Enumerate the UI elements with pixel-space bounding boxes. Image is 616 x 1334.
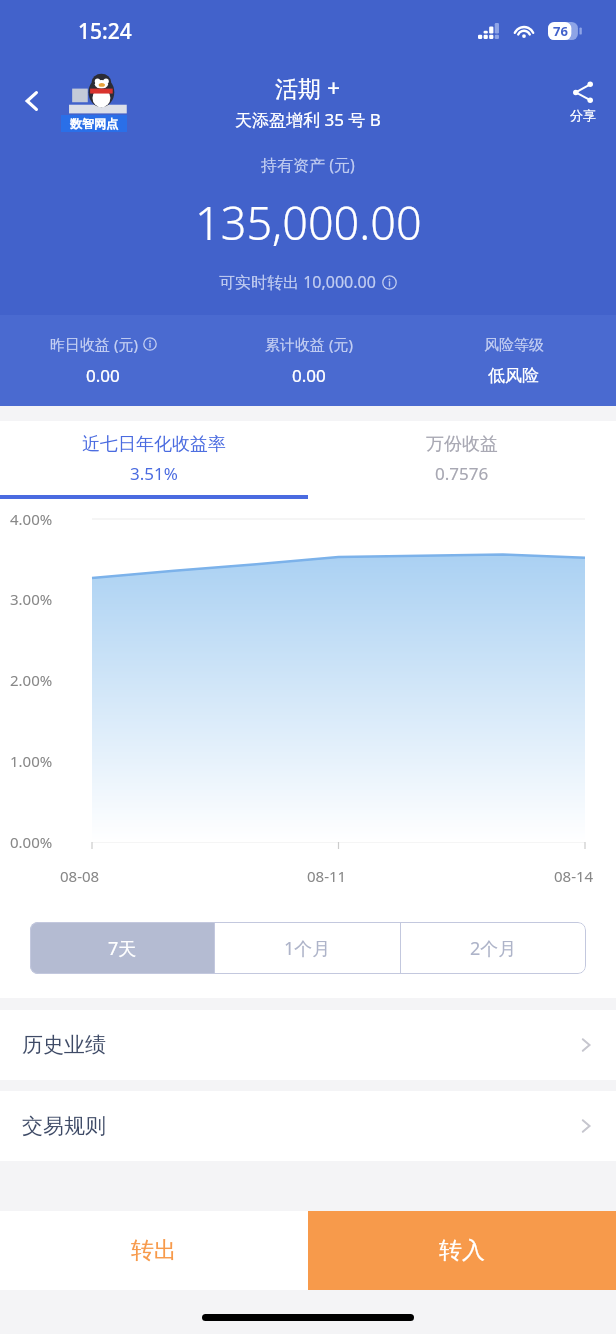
staticText: 0.00 bbox=[86, 364, 120, 387]
staticText: 0.00% bbox=[10, 832, 53, 852]
button[interactable]: 1个月 bbox=[215, 922, 400, 974]
staticText: 累计收益 (元) bbox=[265, 334, 353, 354]
staticText: 1.00% bbox=[10, 751, 53, 771]
staticText: 历史业绩 bbox=[22, 1032, 106, 1058]
staticText: 15:24 bbox=[78, 17, 132, 46]
button[interactable]: 分享 bbox=[566, 76, 600, 127]
button[interactable]: 交易规则 bbox=[0, 1091, 616, 1161]
staticText: 近七日年化收益率 bbox=[82, 433, 226, 456]
staticText: 135,000.00 bbox=[195, 192, 422, 253]
staticText: 万份收益 bbox=[426, 433, 498, 456]
staticText: 0.7576 bbox=[435, 462, 489, 485]
staticText: 转出 bbox=[131, 1236, 177, 1265]
staticText: 2.00% bbox=[10, 670, 53, 690]
staticText: 7天 bbox=[108, 936, 137, 961]
button[interactable]: 近七日年化收益率 bbox=[0, 421, 308, 499]
button[interactable]: 7天 bbox=[30, 922, 214, 974]
staticText: 低风险 bbox=[488, 365, 539, 386]
staticText: 0.00 bbox=[292, 364, 326, 387]
staticText: 分享 bbox=[570, 107, 596, 123]
button[interactable]: 返回 bbox=[10, 79, 54, 123]
button[interactable]: 万份收益 bbox=[308, 421, 616, 499]
staticText: 可实时转出 10,000.00 bbox=[219, 271, 376, 293]
staticText: 1个月 bbox=[284, 936, 331, 961]
staticText: 数智网点 bbox=[70, 116, 118, 131]
staticText: 76 bbox=[553, 22, 568, 40]
button[interactable]: 转入 bbox=[308, 1211, 616, 1290]
staticText: 持有资产 (元) bbox=[261, 154, 355, 176]
staticText: 2个月 bbox=[470, 936, 517, 961]
button[interactable]: 2个月 bbox=[401, 922, 586, 974]
staticText: 08-11 bbox=[307, 866, 347, 886]
staticText: 天添盈增利 35 号 B bbox=[235, 108, 381, 131]
staticText: 转入 bbox=[439, 1236, 485, 1265]
staticText: 交易规则 bbox=[22, 1113, 106, 1139]
staticText: 昨日收益 (元) bbox=[50, 334, 138, 354]
staticText: 活期 + bbox=[275, 72, 341, 103]
button[interactable]: 转出 bbox=[0, 1211, 308, 1290]
staticText: 风险等级 bbox=[484, 336, 544, 355]
button[interactable]: 历史业绩 bbox=[0, 1010, 616, 1080]
staticText: 08-08 bbox=[60, 866, 100, 886]
staticText: 3.51% bbox=[130, 462, 178, 485]
staticText: 08-14 bbox=[554, 866, 594, 886]
staticText: 3.00% bbox=[10, 589, 53, 609]
staticText: 4.00% bbox=[10, 509, 53, 529]
